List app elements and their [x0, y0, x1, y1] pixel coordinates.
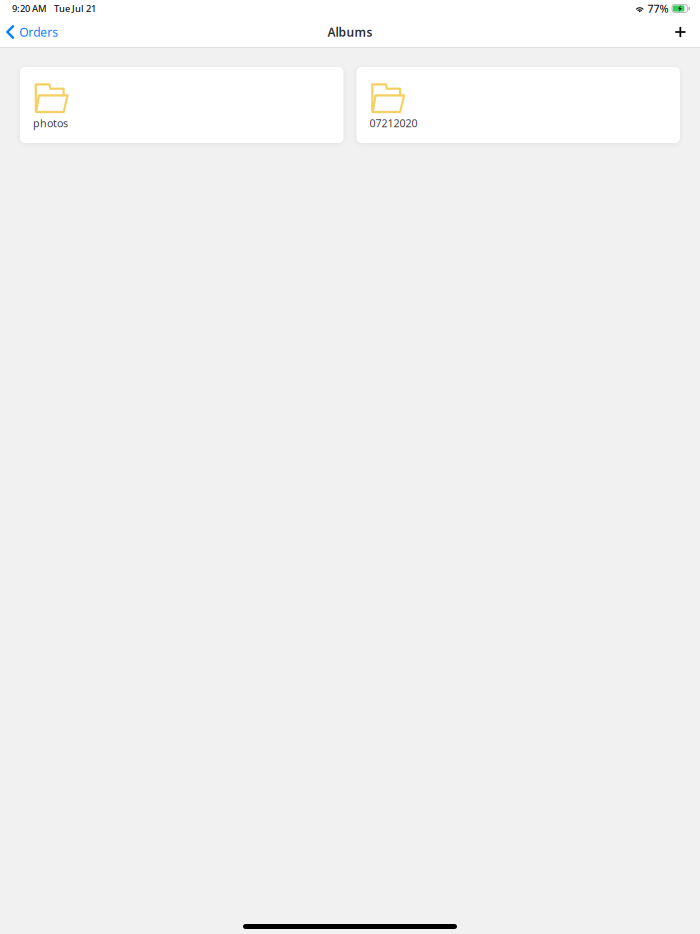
- button[interactable]: Add album: [663, 17, 697, 47]
- staticText: 9:20 AM: [12, 2, 47, 15]
- button[interactable]: Orders: [0, 17, 66, 47]
- staticText: Orders: [19, 24, 58, 40]
- staticText: Albums: [327, 24, 372, 40]
- button[interactable]: photos: [20, 67, 343, 143]
- staticText: photos: [33, 116, 68, 130]
- staticText: 07212020: [369, 116, 417, 130]
- button[interactable]: 07212020: [356, 67, 680, 143]
- staticText: 77%: [647, 1, 668, 16]
- staticText: Tue Jul 21: [54, 2, 96, 15]
